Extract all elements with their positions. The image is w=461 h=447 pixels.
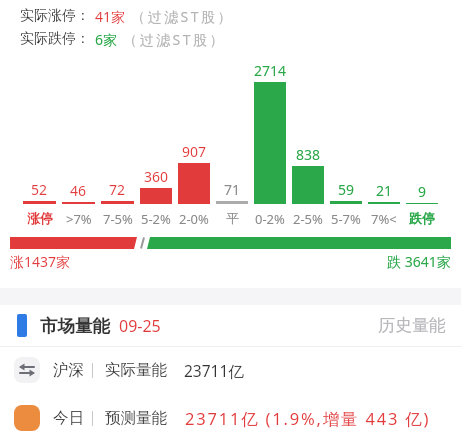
button[interactable]: 市场量能 [17,305,446,346]
staticText: 实际跌停： [20,30,90,48]
staticText: （过滤ST股） [123,30,226,49]
button[interactable] [10,237,451,249]
staticText: 5-2% [141,210,171,228]
button[interactable]: 59 [327,180,365,204]
staticText: 跌 3641家 [387,252,451,271]
staticText: （过滤ST股） [131,7,234,26]
staticText: 09-25 [119,315,161,337]
button[interactable]: 360 [137,167,175,204]
staticText: 市场量能 [40,315,110,337]
staticText: 平 [226,210,239,226]
staticText: 9 [418,182,427,201]
button[interactable]: 52 [20,180,59,204]
button[interactable]: 46 [59,181,98,204]
staticText: 预测量能 [105,408,167,428]
staticText: 838 [296,145,321,164]
button[interactable]: 实际跌停： [20,30,226,49]
staticText: 71 [224,180,241,199]
staticText: 72 [109,180,126,199]
button[interactable]: 今日 [14,393,461,443]
staticText: 2-5% [293,210,323,228]
staticText: 21 [376,181,393,200]
staticText: 23711亿 (1.9%,增量 443 亿) [185,407,431,430]
button[interactable]: 838 [289,145,327,204]
staticText: 0-2% [255,210,285,228]
staticText: 907 [182,142,207,161]
staticText: 沪深 [53,360,84,380]
staticText: 23711亿 [184,360,244,381]
staticText: 46 [70,181,87,200]
staticText: 7%< [371,210,397,228]
staticText: 2-0% [179,210,209,228]
button[interactable]: 72 [98,180,137,204]
button[interactable]: 21 [365,181,403,204]
staticText: 今日 [53,408,84,428]
button[interactable]: 71 [213,180,251,204]
button[interactable]: 沪深 [14,347,461,393]
staticText: 涨停 [27,210,53,226]
staticText: 59 [338,180,355,199]
staticText: 实际涨停： [20,7,90,25]
staticText: >7% [66,210,92,228]
staticText: 5-7% [331,210,361,228]
staticText: 历史量能 [378,315,446,336]
staticText: 实际量能 [105,360,167,380]
staticText: 52 [31,180,48,199]
staticText: 360 [144,167,169,186]
staticText: 2714 [254,61,287,80]
button[interactable]: 2714 [251,61,289,204]
staticText: 7-5% [103,210,133,228]
button[interactable]: 9 [403,182,441,204]
staticText: 41家 [95,7,126,26]
button[interactable]: 907 [175,142,213,204]
staticText: 涨1437家 [10,252,71,271]
staticText: 跌停 [409,210,435,226]
button[interactable]: 实际涨停： [20,7,234,26]
staticText: 6家 [95,30,118,49]
